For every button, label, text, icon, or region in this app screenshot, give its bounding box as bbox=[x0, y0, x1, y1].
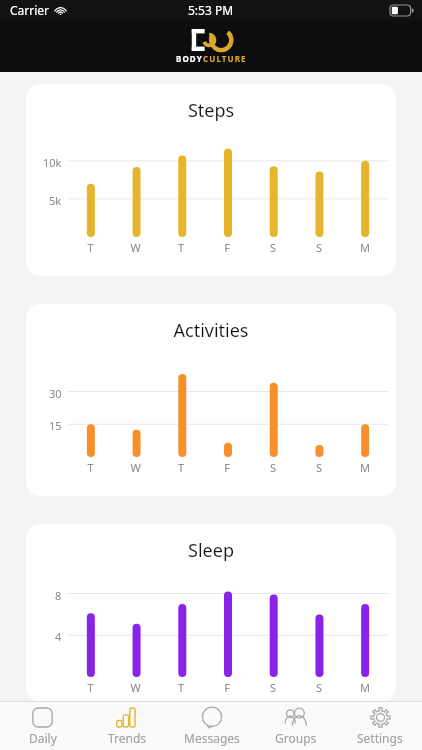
staticText: Daily bbox=[29, 730, 57, 746]
button[interactable]: Steps bbox=[26, 84, 396, 276]
button[interactable]: Activities bbox=[26, 304, 396, 496]
staticText: T bbox=[68, 460, 113, 475]
staticText: T bbox=[158, 460, 204, 475]
staticText: Sleep bbox=[26, 538, 396, 563]
staticText: Settings bbox=[357, 730, 403, 746]
button[interactable]: Settings bbox=[338, 707, 422, 746]
staticText: 5k bbox=[49, 193, 62, 208]
staticText: S bbox=[296, 680, 342, 695]
staticText: S bbox=[296, 240, 342, 255]
button[interactable]: Sleep bbox=[26, 524, 396, 701]
staticText: W bbox=[113, 240, 158, 255]
staticText: T bbox=[158, 240, 204, 255]
staticText: Steps bbox=[26, 98, 396, 123]
button[interactable]: Groups bbox=[254, 707, 338, 746]
staticText: T bbox=[158, 680, 204, 695]
staticText: 4 bbox=[55, 629, 62, 644]
staticText: W bbox=[113, 460, 158, 475]
staticText: M bbox=[342, 680, 388, 695]
staticText: BODY bbox=[176, 53, 203, 64]
staticText: 30 bbox=[49, 386, 62, 401]
staticText: 8 bbox=[55, 588, 62, 603]
staticText: T bbox=[68, 240, 113, 255]
staticText: S bbox=[296, 460, 342, 475]
staticText: W bbox=[113, 680, 158, 695]
staticText: Activities bbox=[26, 318, 396, 343]
staticText: 10k bbox=[43, 155, 62, 170]
staticText: T bbox=[68, 680, 113, 695]
staticText: S bbox=[250, 240, 296, 255]
staticText: M bbox=[342, 240, 388, 255]
button[interactable]: Trends bbox=[85, 707, 170, 746]
staticText: Trends bbox=[108, 730, 147, 746]
staticText: Messages bbox=[184, 730, 240, 746]
staticText: F bbox=[204, 680, 250, 695]
button[interactable]: Messages bbox=[170, 707, 254, 746]
staticText: Groups bbox=[275, 730, 317, 746]
staticText: CULTURE bbox=[203, 53, 247, 64]
staticText: 15 bbox=[49, 418, 62, 433]
staticText: 5:53 PM bbox=[188, 2, 234, 18]
staticText: M bbox=[342, 460, 388, 475]
staticText: S bbox=[250, 680, 296, 695]
staticText: F bbox=[204, 240, 250, 255]
staticText: S bbox=[250, 460, 296, 475]
button[interactable]: Daily bbox=[0, 707, 85, 746]
staticText: Carrier bbox=[10, 2, 50, 18]
staticText: F bbox=[204, 460, 250, 475]
